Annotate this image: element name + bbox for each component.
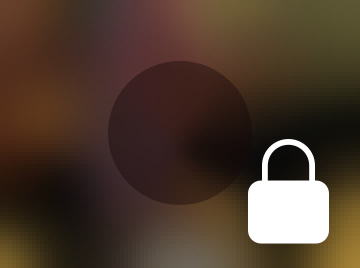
button[interactable]: Locked — tap to unlock (108, 61, 252, 205)
